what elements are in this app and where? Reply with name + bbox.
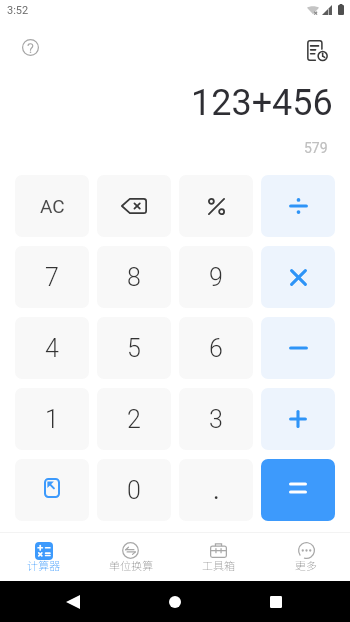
- button[interactable]: 3: [179, 388, 253, 450]
- button[interactable]: 4: [15, 317, 89, 379]
- staticText: 579: [304, 140, 328, 156]
- staticText: 5: [127, 334, 141, 363]
- staticText: 计算器: [27, 557, 60, 573]
- button[interactable]: 更多: [262, 525, 350, 581]
- other: Percent: [207, 197, 226, 216]
- staticText: 单位换算: [109, 557, 153, 573]
- staticText: 9: [209, 263, 223, 292]
- button[interactable]: 9: [179, 246, 253, 308]
- button[interactable]: History: [301, 34, 333, 66]
- button[interactable]: AC: [15, 175, 89, 237]
- button[interactable]: Plus: [261, 388, 335, 450]
- button[interactable]: 6: [179, 317, 253, 379]
- button[interactable]: Backspace: [97, 175, 171, 237]
- button[interactable]: Home: [158, 585, 192, 619]
- button[interactable]: 5: [97, 317, 171, 379]
- button[interactable]: .: [179, 459, 253, 521]
- staticText: 6: [209, 334, 223, 363]
- staticText: AC: [40, 195, 65, 217]
- other: Minus: [289, 346, 308, 350]
- staticText: 123+456: [191, 82, 333, 124]
- button[interactable]: Minus: [261, 317, 335, 379]
- other: Plus: [289, 410, 307, 428]
- staticText: .: [213, 476, 220, 505]
- button[interactable]: Expand: [15, 459, 89, 521]
- other: Expand: [44, 478, 60, 498]
- button[interactable]: 7: [15, 246, 89, 308]
- button[interactable]: Help: [14, 31, 46, 63]
- button[interactable]: 8: [97, 246, 171, 308]
- staticText: 3:52: [7, 4, 29, 17]
- staticText: 4: [45, 334, 59, 363]
- button[interactable]: 0: [97, 459, 171, 521]
- button[interactable]: Multiply: [261, 246, 335, 308]
- button[interactable]: Percent: [179, 175, 253, 237]
- other: Backspace: [121, 198, 147, 214]
- staticText: 3: [209, 405, 223, 434]
- staticText: 8: [127, 263, 141, 292]
- button[interactable]: 2: [97, 388, 171, 450]
- other: Divide: [289, 198, 308, 214]
- button[interactable]: 计算器: [0, 525, 87, 581]
- button[interactable]: Equals: [261, 459, 335, 521]
- staticText: 2: [127, 405, 141, 434]
- button[interactable]: Divide: [261, 175, 335, 237]
- button[interactable]: 1: [15, 388, 89, 450]
- button[interactable]: 单位换算: [87, 525, 174, 581]
- other: Multiply: [290, 269, 307, 286]
- staticText: 更多: [295, 557, 317, 573]
- staticText: 1: [45, 405, 59, 434]
- staticText: 0: [127, 476, 141, 505]
- button[interactable]: Recents: [259, 585, 293, 619]
- staticText: 7: [45, 263, 59, 292]
- button[interactable]: Back: [56, 585, 90, 619]
- other: Equals: [289, 482, 307, 494]
- staticText: 工具箱: [202, 557, 235, 573]
- button[interactable]: 工具箱: [174, 525, 262, 581]
